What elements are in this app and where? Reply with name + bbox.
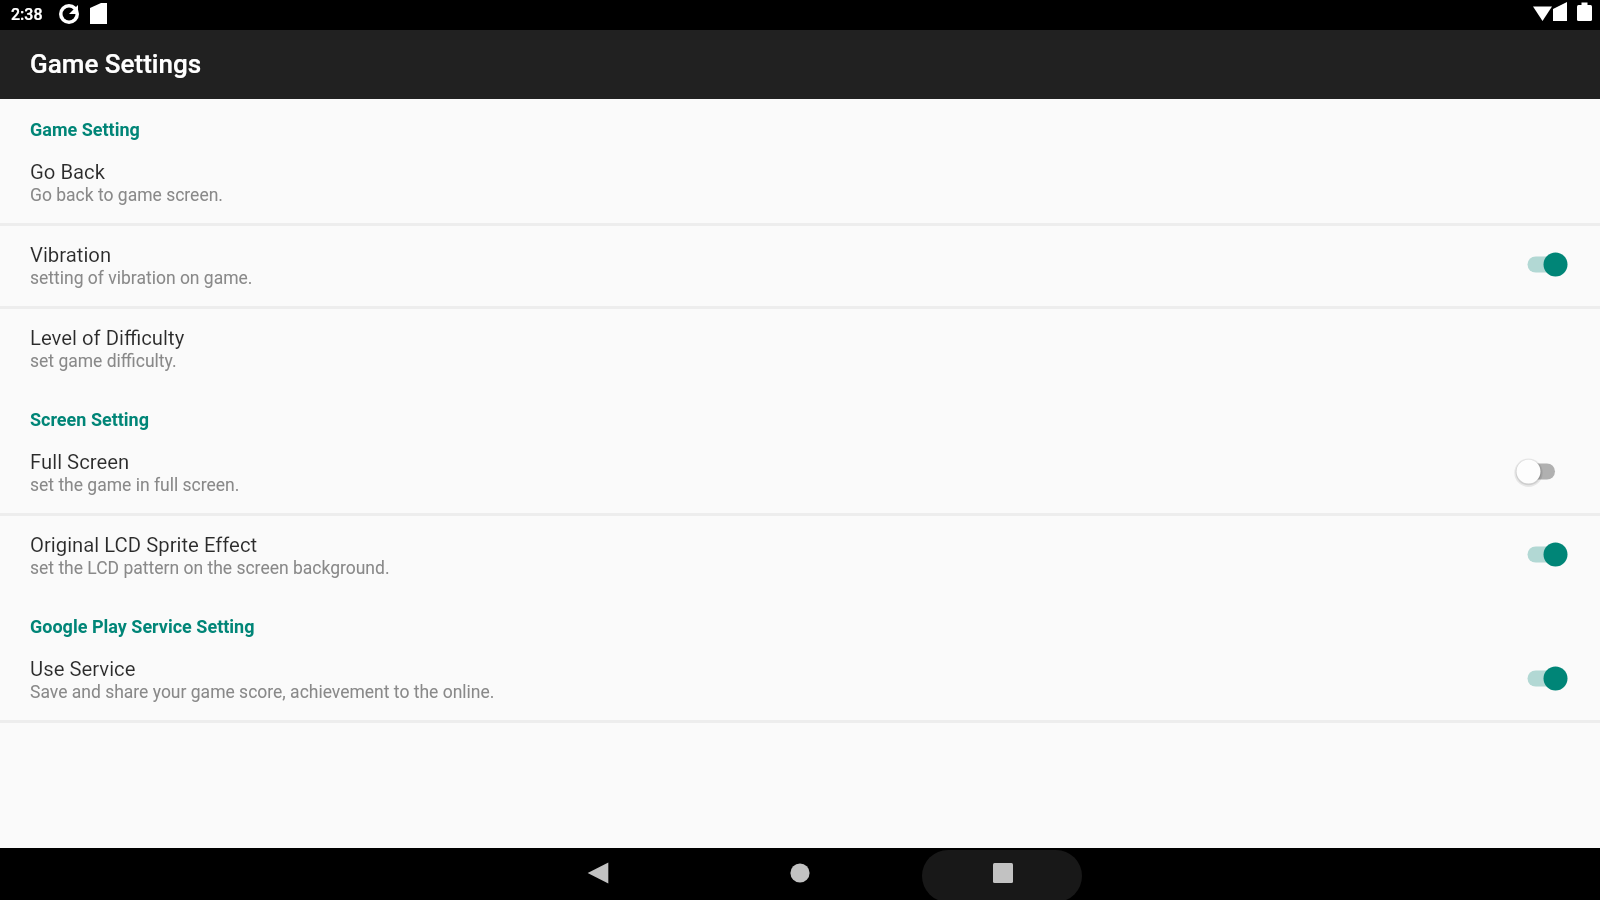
button[interactable]: Use Service: [0, 637, 1600, 720]
button[interactable]: Go Back: [0, 140, 1600, 223]
staticText: setting of vibration on game.: [30, 268, 253, 289]
staticText: Full Screen: [30, 450, 130, 474]
staticText: set the game in full screen.: [30, 475, 240, 496]
button[interactable]: Vibration switch, on: [1524, 223, 1600, 306]
button[interactable]: Original LCD Sprite Effect: [0, 513, 1600, 596]
staticText: Level of Difficulty: [30, 326, 185, 350]
button[interactable]: Full Screen switch, off: [1524, 430, 1600, 513]
button[interactable]: Vibration: [0, 223, 1600, 306]
button[interactable]: Recents: [922, 848, 1082, 900]
button[interactable]: Full Screen: [0, 430, 1600, 513]
staticText: Original LCD Sprite Effect: [30, 533, 258, 557]
button[interactable]: Use Service switch, on: [1524, 637, 1600, 720]
staticText: 2:38: [11, 5, 43, 24]
staticText: Vibration: [30, 243, 112, 267]
staticText: Google Play Service Setting: [30, 616, 255, 637]
staticText: Use Service: [30, 657, 136, 681]
button[interactable]: Original LCD Sprite Effect switch, on: [1524, 513, 1600, 596]
button[interactable]: Back: [538, 848, 658, 900]
staticText: Go Back: [30, 160, 106, 184]
button[interactable]: Home: [740, 848, 860, 900]
staticText: Go back to game screen.: [30, 185, 223, 206]
staticText: set game difficulty.: [30, 351, 177, 372]
button[interactable]: Level of Difficulty: [0, 306, 1600, 389]
staticText: set the LCD pattern on the screen backgr…: [30, 558, 390, 579]
staticText: Save and share your game score, achievem…: [30, 682, 495, 703]
staticText: Game Settings: [30, 49, 202, 79]
staticText: Screen Setting: [30, 409, 149, 430]
staticText: Game Setting: [30, 119, 140, 140]
